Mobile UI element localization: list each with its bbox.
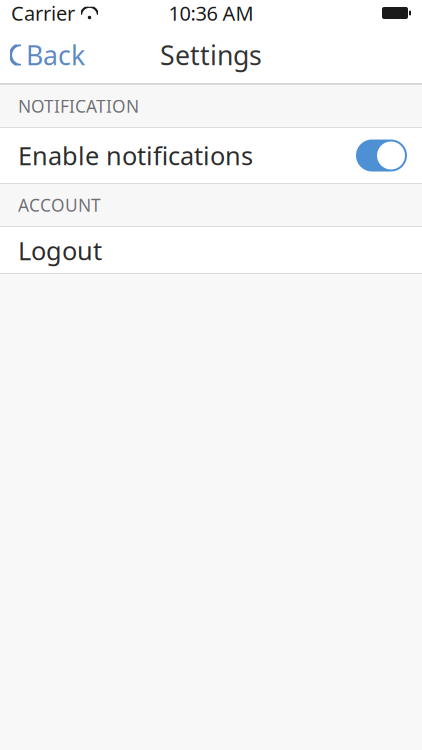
button[interactable]: Back <box>0 28 99 82</box>
staticText: 10:36 AM <box>168 0 253 26</box>
button[interactable]: Enable notifications <box>0 128 422 183</box>
staticText: Logout <box>18 234 102 267</box>
staticText: Carrier <box>11 0 75 26</box>
staticText: Enable notifications <box>18 139 253 172</box>
button[interactable]: Logout <box>0 227 422 274</box>
staticText: Back <box>26 37 85 73</box>
staticText: NOTIFICATION <box>18 94 139 117</box>
staticText: ACCOUNT <box>18 193 101 216</box>
staticText: Settings <box>160 37 262 73</box>
